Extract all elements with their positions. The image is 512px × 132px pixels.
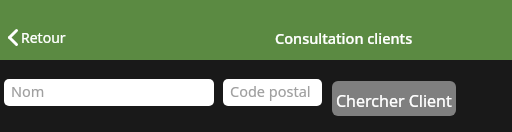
button[interactable]: Code postal [223,79,322,106]
staticText: Chercher Client [336,90,452,112]
other: Back [8,29,18,46]
button[interactable]: Back [0,26,76,49]
staticText: Nom [11,81,45,101]
staticText: Retour [21,28,66,47]
button[interactable]: Nom [4,79,214,106]
button[interactable]: Chercher Client [332,81,456,116]
staticText: Code postal [230,81,311,101]
staticText: Consultation clients [275,28,413,48]
